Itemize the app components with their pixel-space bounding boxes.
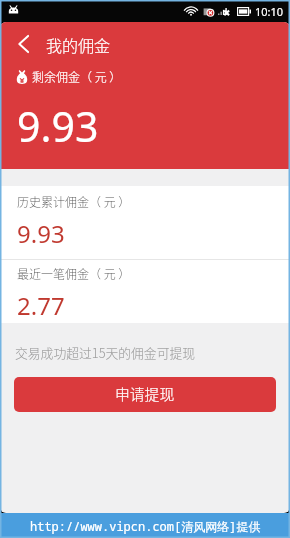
- button[interactable]: Back: [10, 31, 36, 57]
- staticText: 9.93: [17, 98, 99, 154]
- staticText: http://www.vipcn.com[清风网络]提供: [30, 518, 261, 534]
- staticText: 2.77: [17, 289, 65, 322]
- staticText: 剩余佣金（ 元 ）: [32, 68, 122, 85]
- staticText: 历史累计佣金（ 元 ）: [17, 193, 131, 210]
- staticText: 10:10: [255, 4, 284, 19]
- button[interactable]: 申请提现: [14, 377, 276, 412]
- staticText: 申请提现: [115, 383, 175, 404]
- staticText: 9.93: [17, 217, 65, 250]
- staticText: 我的佣金: [46, 33, 111, 56]
- staticText: 最近一笔佣金（ 元 ）: [17, 265, 131, 282]
- staticText: 交易成功超过15天的佣金可提现: [15, 343, 196, 362]
